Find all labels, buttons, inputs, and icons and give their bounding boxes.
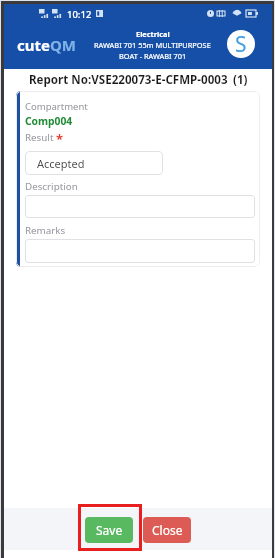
staticText: BOAT - RAWABI 701 [119,51,187,61]
staticText: Accepted [37,156,85,171]
button[interactable]: Profile [227,30,255,58]
staticText: QM [50,35,77,55]
staticText: Save [96,522,123,538]
staticText: 10:12 [67,8,92,21]
staticText: (1) [233,72,248,88]
button[interactable] [25,195,255,218]
staticText: Close [152,522,183,538]
button[interactable]: Close [143,517,191,543]
staticText: Result [25,131,56,144]
staticText: cute [17,35,50,55]
button[interactable]: Save [85,517,133,543]
staticText: Compartment [25,100,88,113]
button[interactable]: Accepted [25,151,163,175]
button[interactable]: cute [17,35,77,55]
staticText: Report No:VSE220073-E-CFMP-0003 [29,72,228,88]
staticText: Comp004 [25,114,73,128]
staticText: Electrical [136,29,170,39]
staticText: RAWABI 701 55m MULTIPURPOSE [94,40,211,50]
staticText: * [56,130,64,148]
staticText: Description [25,180,78,193]
staticText: S [235,30,247,58]
staticText: Remarks [25,224,66,237]
button[interactable] [25,239,255,263]
